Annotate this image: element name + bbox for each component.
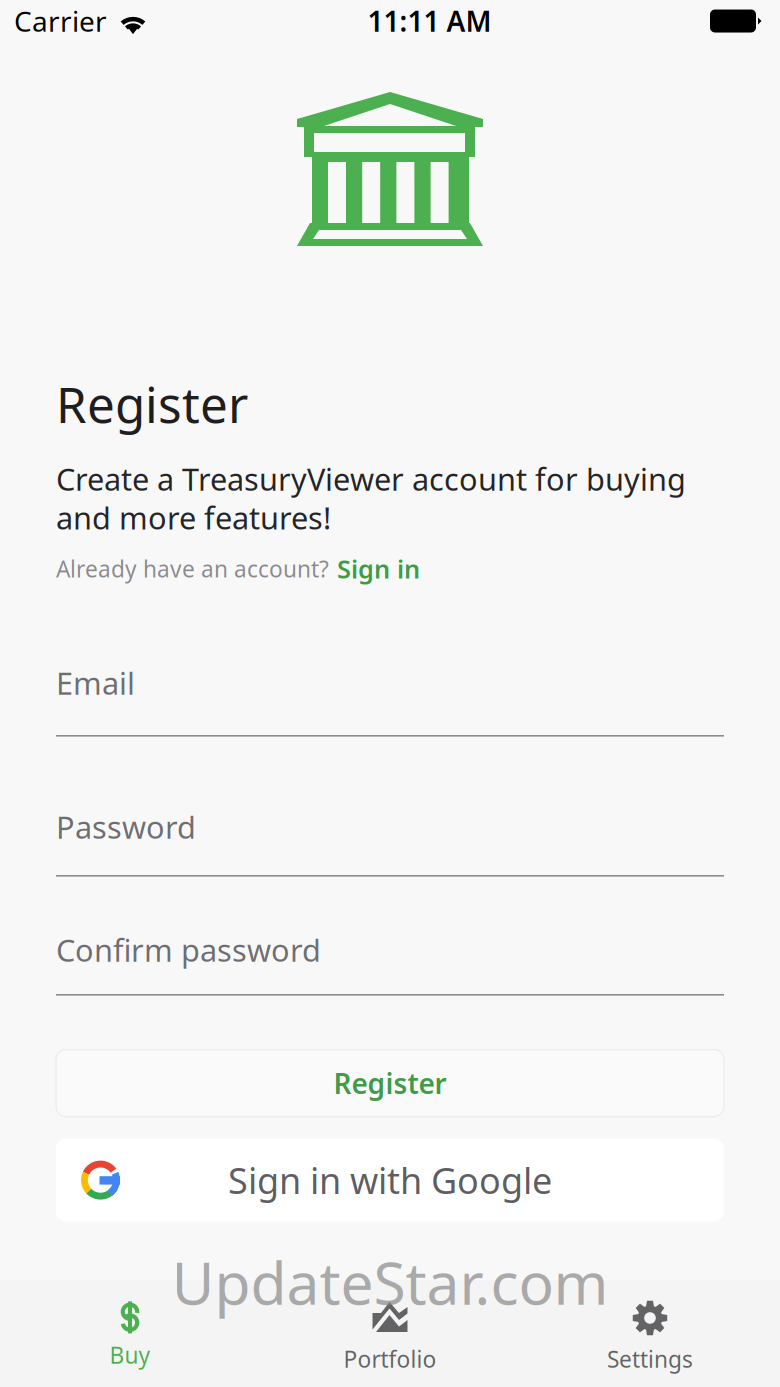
staticText: Buy (109, 1340, 150, 1370)
staticText: Create a TreasuryViewer account for buyi… (56, 458, 686, 538)
staticText: 11:11 AM (367, 2, 491, 40)
button[interactable]: Sign in with Google (56, 1139, 724, 1222)
button[interactable]: Portfolio (260, 1280, 520, 1387)
staticText: Already have an account? (56, 554, 329, 584)
staticText: UpdateStar.com (171, 1243, 608, 1321)
staticText: Settings (607, 1344, 693, 1374)
staticText: Carrier (14, 2, 107, 40)
staticText: Sign in (337, 552, 420, 586)
button[interactable]: Sign in (337, 552, 420, 586)
staticText: Password (56, 807, 196, 847)
button[interactable]: Buy (0, 1280, 260, 1387)
staticText: Register (333, 1064, 446, 1102)
staticText: Confirm password (56, 930, 321, 970)
staticText: Sign in with Google (228, 1156, 552, 1204)
staticText: Portfolio (343, 1344, 436, 1374)
staticText: Register (56, 371, 248, 436)
button[interactable]: Settings (520, 1280, 780, 1387)
staticText: Email (56, 663, 135, 703)
button[interactable]: Register (56, 1050, 724, 1117)
